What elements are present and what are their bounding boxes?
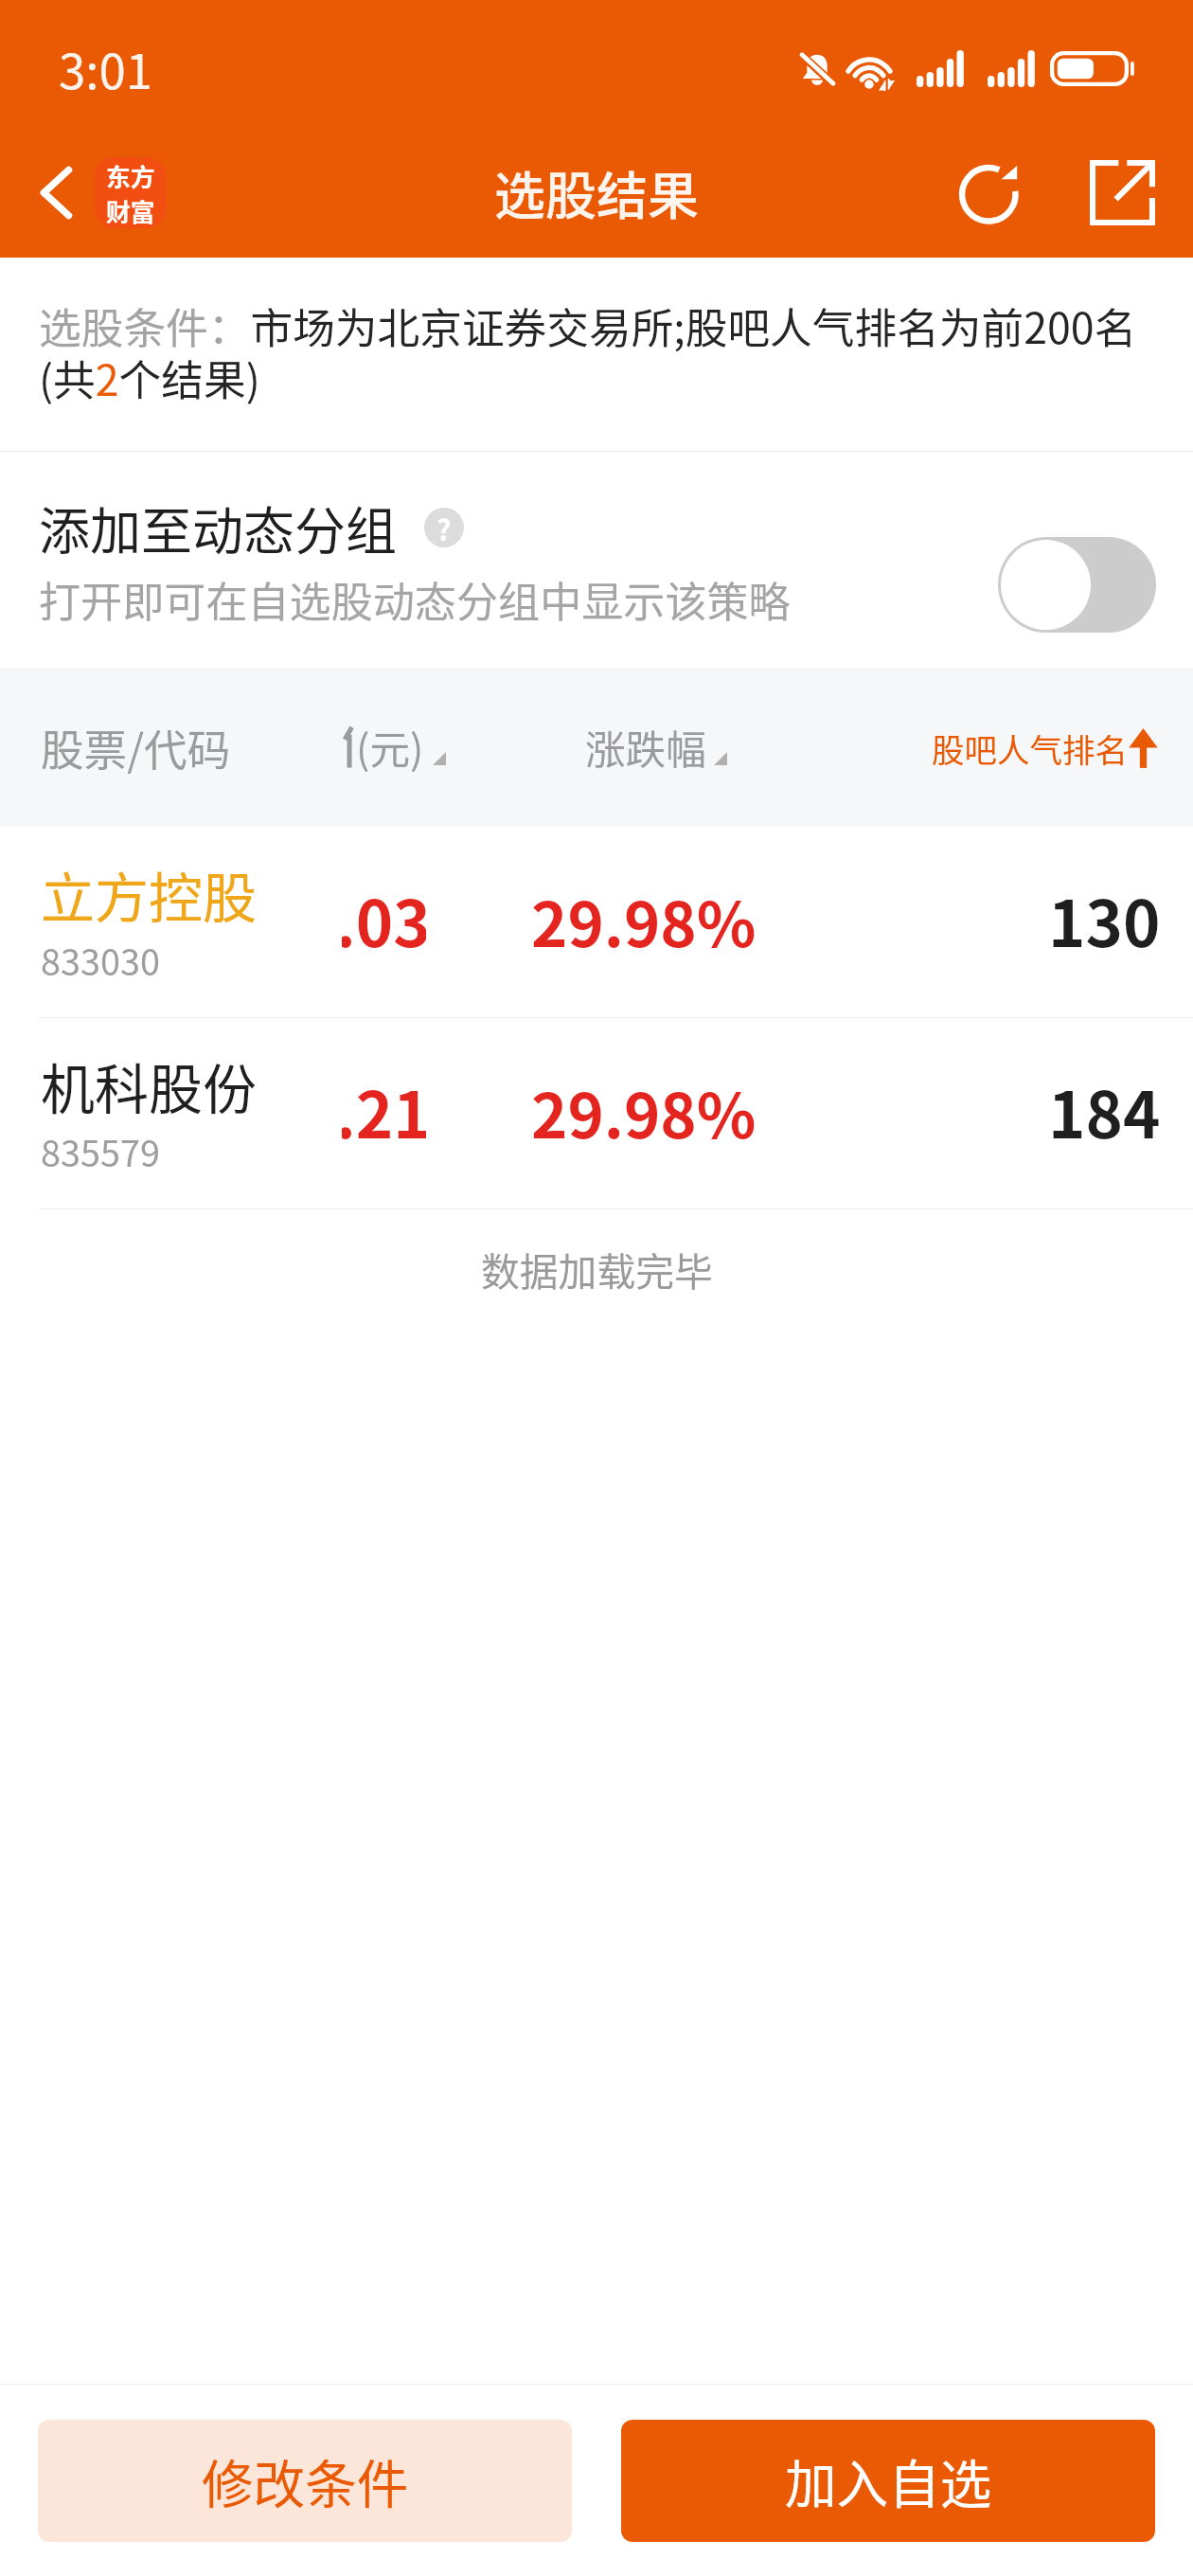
button[interactable]: 加入自选 bbox=[621, 2420, 1155, 2542]
staticText: 立方控股 bbox=[41, 855, 257, 934]
button[interactable]: 添加至动态分组 bbox=[0, 452, 1193, 668]
staticText: .03 bbox=[342, 877, 426, 958]
staticText: 涨跌幅 bbox=[585, 718, 706, 777]
button[interactable]: 立方控股 bbox=[0, 827, 1193, 1018]
staticText: 财富 bbox=[106, 193, 155, 228]
staticText: 3:01 bbox=[59, 33, 153, 103]
staticText: 加入自选 bbox=[785, 2443, 992, 2518]
button[interactable]: Back bbox=[0, 140, 188, 245]
staticText: 东方 bbox=[106, 158, 155, 193]
staticText: 选股条件：市场为北京证券交易所;股吧人气排名为前200名 bbox=[39, 295, 1137, 356]
staticText: 机科股份 bbox=[41, 1046, 257, 1125]
staticText: 股吧人气排名 bbox=[932, 724, 1128, 772]
button[interactable]: Share bbox=[1057, 127, 1187, 258]
button[interactable]: 机科股份 bbox=[0, 1018, 1193, 1209]
staticText: 添加至动态分组 bbox=[39, 491, 397, 564]
staticText: (元) bbox=[356, 718, 424, 777]
staticText: 184 bbox=[1048, 1064, 1161, 1156]
staticText: 29.98% bbox=[531, 875, 757, 964]
button[interactable]: 修改条件 bbox=[38, 2420, 572, 2542]
staticText: 修改条件 bbox=[202, 2443, 409, 2518]
staticText: 29.98% bbox=[531, 1066, 757, 1155]
button[interactable]: Add to dynamic group toggle bbox=[998, 537, 1156, 633]
staticText: 股票/代码 bbox=[41, 716, 231, 778]
button[interactable]: Refresh bbox=[926, 127, 1057, 258]
staticText: 833030 bbox=[41, 934, 160, 986]
staticText: .21 bbox=[342, 1068, 426, 1150]
staticText: 选股结果 bbox=[494, 155, 699, 229]
staticText: 打开即可在自选股动态分组中显示该策略 bbox=[39, 569, 791, 630]
staticText: (共2个结果) bbox=[39, 347, 260, 408]
staticText: 835579 bbox=[41, 1125, 160, 1177]
staticText: 数据加载完毕 bbox=[481, 1242, 713, 1297]
staticText: ? bbox=[436, 508, 452, 547]
staticText: 130 bbox=[1048, 873, 1161, 965]
